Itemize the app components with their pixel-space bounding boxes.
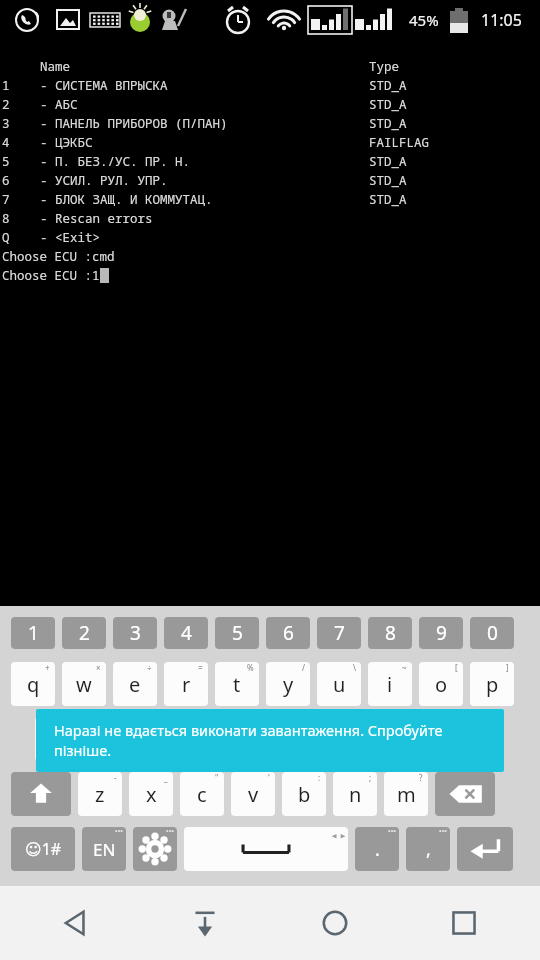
staticText: 5 xyxy=(2,153,10,170)
button[interactable]: s xyxy=(86,717,130,761)
staticText: f xyxy=(207,726,214,753)
staticText: - СИСТЕМА ВПРЫСКА xyxy=(40,77,168,94)
staticText: " xyxy=(215,772,219,783)
staticText: ? xyxy=(419,772,423,783)
staticText: 7 xyxy=(334,620,345,646)
button[interactable]: Shift xyxy=(11,772,71,816)
staticText: u xyxy=(333,671,346,698)
staticText: STD_A xyxy=(369,115,407,132)
staticText: 1 xyxy=(2,77,10,94)
button[interactable]: f xyxy=(188,717,232,761)
button[interactable]: 9 xyxy=(419,617,463,649)
staticText: \ xyxy=(353,662,356,673)
staticText: , xyxy=(426,837,431,862)
staticText: r xyxy=(182,671,191,698)
button[interactable]: g xyxy=(239,717,283,761)
button[interactable]: Space xyxy=(184,827,348,871)
button[interactable]: x xyxy=(129,772,173,816)
staticText: m xyxy=(397,781,416,808)
button[interactable]: c xyxy=(180,772,224,816)
staticText: s xyxy=(103,726,113,753)
button[interactable]: , xyxy=(406,827,450,871)
button[interactable]: Settings xyxy=(133,827,177,871)
staticText: g xyxy=(255,726,268,753)
staticText: ••• xyxy=(115,827,123,837)
button[interactable]: t xyxy=(215,662,259,706)
button[interactable]: a xyxy=(35,717,79,761)
button[interactable]: k xyxy=(392,717,436,761)
button[interactable]: z xyxy=(78,772,122,816)
button[interactable]: v xyxy=(231,772,275,816)
button[interactable]: 8 xyxy=(368,617,412,649)
staticText: q xyxy=(27,671,40,698)
button[interactable]: 3 xyxy=(113,617,157,649)
button[interactable]: 2 xyxy=(62,617,106,649)
staticText: ••• xyxy=(439,827,447,837)
button[interactable]: 1 xyxy=(11,617,55,649)
staticText: EN xyxy=(93,838,116,861)
button[interactable]: b xyxy=(282,772,326,816)
staticText: t xyxy=(233,671,241,698)
button[interactable]: n xyxy=(333,772,377,816)
button[interactable]: Home xyxy=(299,887,371,959)
staticText: Наразі не вдається виконати завантаження… xyxy=(54,720,490,760)
button[interactable]: 7 xyxy=(317,617,361,649)
button[interactable]: 4 xyxy=(164,617,208,649)
button[interactable]: o xyxy=(419,662,463,706)
staticText: 6 xyxy=(283,620,294,646)
button[interactable]: Language xyxy=(82,827,126,871)
staticText: Choose ECU :cmd xyxy=(2,248,115,265)
button[interactable]: Recent apps xyxy=(428,887,500,959)
button[interactable]: Back xyxy=(40,887,112,959)
staticText: v xyxy=(248,781,259,808)
staticText: 11:05 xyxy=(481,9,522,31)
button[interactable]: Backspace xyxy=(435,772,495,816)
staticText: - ПАНЕЛЬ ПРИБОРОВ (П/ПАН) xyxy=(40,115,228,132)
staticText: ; xyxy=(369,772,372,783)
button[interactable]: Enter xyxy=(457,827,513,871)
button[interactable]: h xyxy=(290,717,334,761)
button[interactable]: 6 xyxy=(266,617,310,649)
staticText: : xyxy=(318,772,321,783)
button[interactable]: w xyxy=(62,662,106,706)
button[interactable]: u xyxy=(317,662,361,706)
staticText: x xyxy=(146,781,157,808)
staticText: STD_A xyxy=(369,77,407,94)
staticText: j xyxy=(360,726,366,753)
button[interactable]: Symbols xyxy=(11,827,75,871)
staticText: / xyxy=(302,662,305,673)
button[interactable]: i xyxy=(368,662,412,706)
staticText: 3 xyxy=(2,115,10,132)
staticText: h xyxy=(306,726,319,753)
staticText: - АБС xyxy=(40,96,78,113)
button[interactable]: d xyxy=(137,717,181,761)
button[interactable]: . xyxy=(355,827,399,871)
button[interactable]: p xyxy=(470,662,514,706)
staticText: z xyxy=(95,781,105,808)
staticText: ••• xyxy=(166,827,174,837)
staticText: 1 xyxy=(28,620,39,646)
button[interactable]: j xyxy=(341,717,385,761)
staticText: b xyxy=(298,781,311,808)
staticText: 3 xyxy=(130,620,141,646)
button[interactable]: 0 xyxy=(470,617,514,649)
button[interactable]: Hide keyboard xyxy=(169,887,241,959)
button[interactable]: 5 xyxy=(215,617,259,649)
staticText: 2 xyxy=(79,620,90,646)
button[interactable]: m xyxy=(384,772,428,816)
button[interactable]: q xyxy=(11,662,55,706)
button[interactable]: e xyxy=(113,662,157,706)
staticText: ] xyxy=(506,662,509,673)
staticText: p xyxy=(486,671,499,698)
button[interactable]: y xyxy=(266,662,310,706)
staticText: - <Exit> xyxy=(40,229,101,246)
staticText: [ xyxy=(455,662,458,673)
button[interactable]: r xyxy=(164,662,208,706)
